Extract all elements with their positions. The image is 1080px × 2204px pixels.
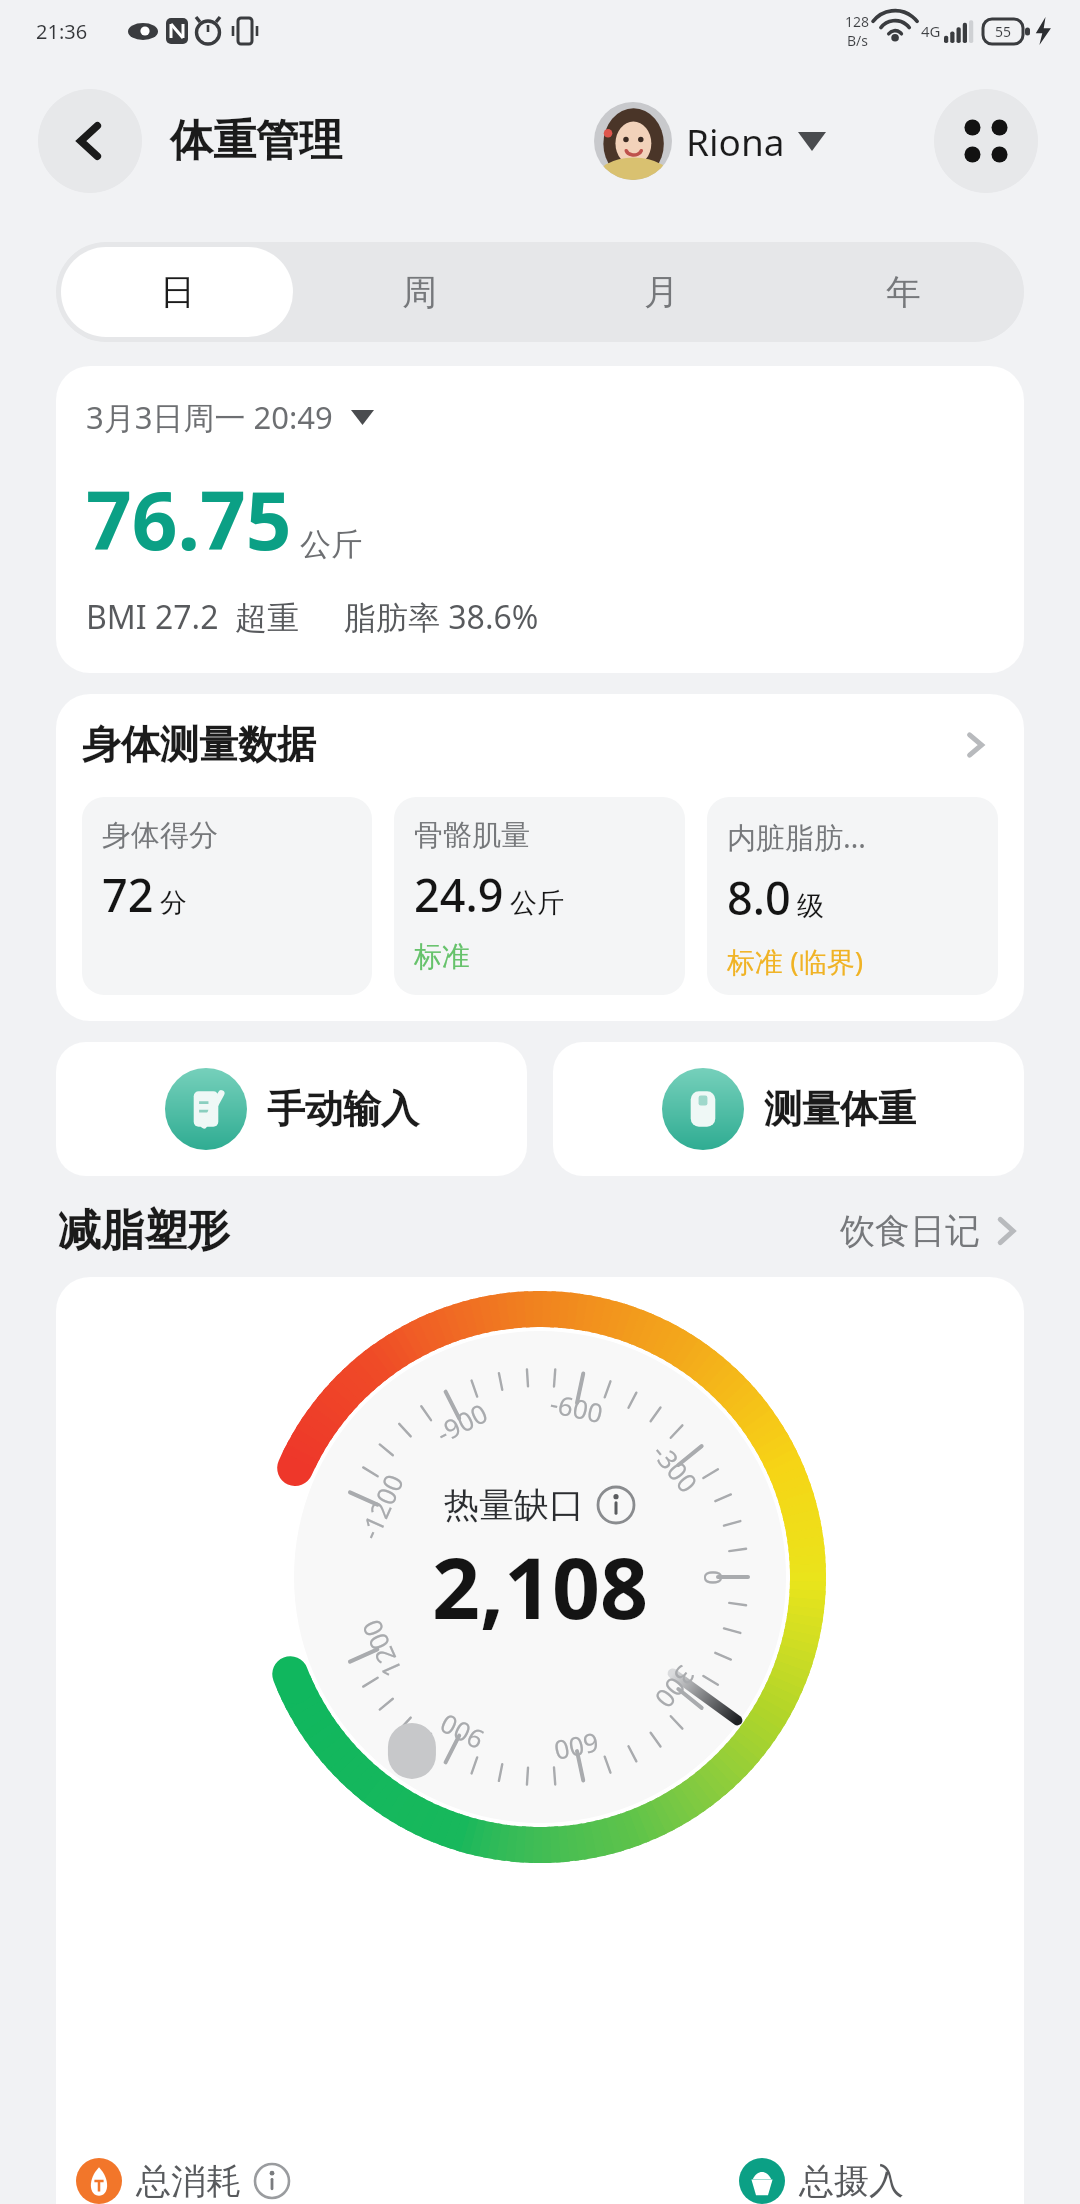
staticText: 身体得分 <box>102 817 218 854</box>
button[interactable]: 日 <box>61 247 293 337</box>
staticText: 分 <box>160 886 187 920</box>
staticText: 3月3日周一 20:49 <box>86 396 333 438</box>
staticText: Riona <box>686 116 785 166</box>
button[interactable]: Back <box>38 89 142 193</box>
staticText: 300 <box>648 1659 703 1716</box>
staticText: 标准 (临界) <box>727 942 864 980</box>
button[interactable]: 手动输入 <box>56 1042 527 1176</box>
staticText: -900 <box>430 1395 493 1450</box>
staticText: 脂肪率 38.6% <box>344 595 539 639</box>
staticText: 128 <box>845 12 870 31</box>
staticText: 饮食日记 <box>840 1209 980 1253</box>
button[interactable]: 总摄入 <box>739 2158 904 2204</box>
staticText: 72 <box>102 864 154 925</box>
staticText: 减脂塑形 <box>58 1204 230 1258</box>
staticText: 21:36 <box>36 18 88 45</box>
staticText: 月 <box>644 270 679 314</box>
staticText: 2,108 <box>432 1529 649 1643</box>
staticText: 骨骼肌量 <box>414 817 530 854</box>
staticText: 55 <box>995 22 1012 41</box>
staticText: 身体测量数据 <box>82 720 316 769</box>
button[interactable]: 月 <box>545 247 777 337</box>
button[interactable]: 饮食日记 <box>840 1209 1022 1253</box>
staticText: 8.0 <box>727 867 791 928</box>
button[interactable]: Riona <box>594 102 826 180</box>
staticText: 公斤 <box>510 886 564 920</box>
staticText: 手动输入 <box>267 1085 419 1133</box>
button[interactable]: 骨骼肌量 <box>394 797 685 995</box>
button[interactable]: 总消耗 <box>76 2158 291 2204</box>
staticText: -600 <box>547 1385 606 1430</box>
staticText: 内脏脂肪… <box>727 817 866 857</box>
staticText: 600 <box>551 1726 602 1769</box>
staticText: 热量缺口 <box>444 1483 584 1527</box>
staticText: 1200 <box>353 1614 409 1683</box>
staticText: 76.75 <box>86 464 292 573</box>
staticText: -1200 <box>351 1468 411 1545</box>
button[interactable]: Info <box>253 2162 291 2200</box>
button[interactable]: 测量体重 <box>553 1042 1024 1176</box>
staticText: 900 <box>433 1707 489 1758</box>
staticText: B/s <box>847 31 869 50</box>
button[interactable]: Info <box>596 1485 636 1525</box>
staticText: 周 <box>402 270 437 314</box>
staticText: 总消耗 <box>136 2159 241 2203</box>
staticText: BMI 27.2 超重 <box>86 595 300 639</box>
staticText: 公斤 <box>300 525 362 564</box>
button[interactable]: 身体得分 <box>82 797 372 995</box>
button[interactable]: 内脏脂肪… <box>707 797 998 995</box>
staticText: -300 <box>645 1436 706 1499</box>
staticText: 体重管理 <box>170 114 342 168</box>
staticText: 4G <box>921 21 941 41</box>
staticText: 总摄入 <box>799 2159 904 2203</box>
staticText: 测量体重 <box>764 1085 916 1133</box>
staticText: 0 <box>697 1570 732 1585</box>
button[interactable]: 身体测量数据 <box>82 720 998 769</box>
button[interactable]: More options <box>934 89 1038 193</box>
button[interactable]: 3月3日周一 20:49 <box>56 366 1024 673</box>
staticText: 标准 <box>414 939 470 974</box>
button[interactable]: 年 <box>787 247 1019 337</box>
staticText: 级 <box>797 889 824 923</box>
staticText: 年 <box>886 270 921 314</box>
button[interactable]: 周 <box>303 247 535 337</box>
staticText: 24.9 <box>414 864 504 925</box>
staticText: 日 <box>160 270 195 314</box>
